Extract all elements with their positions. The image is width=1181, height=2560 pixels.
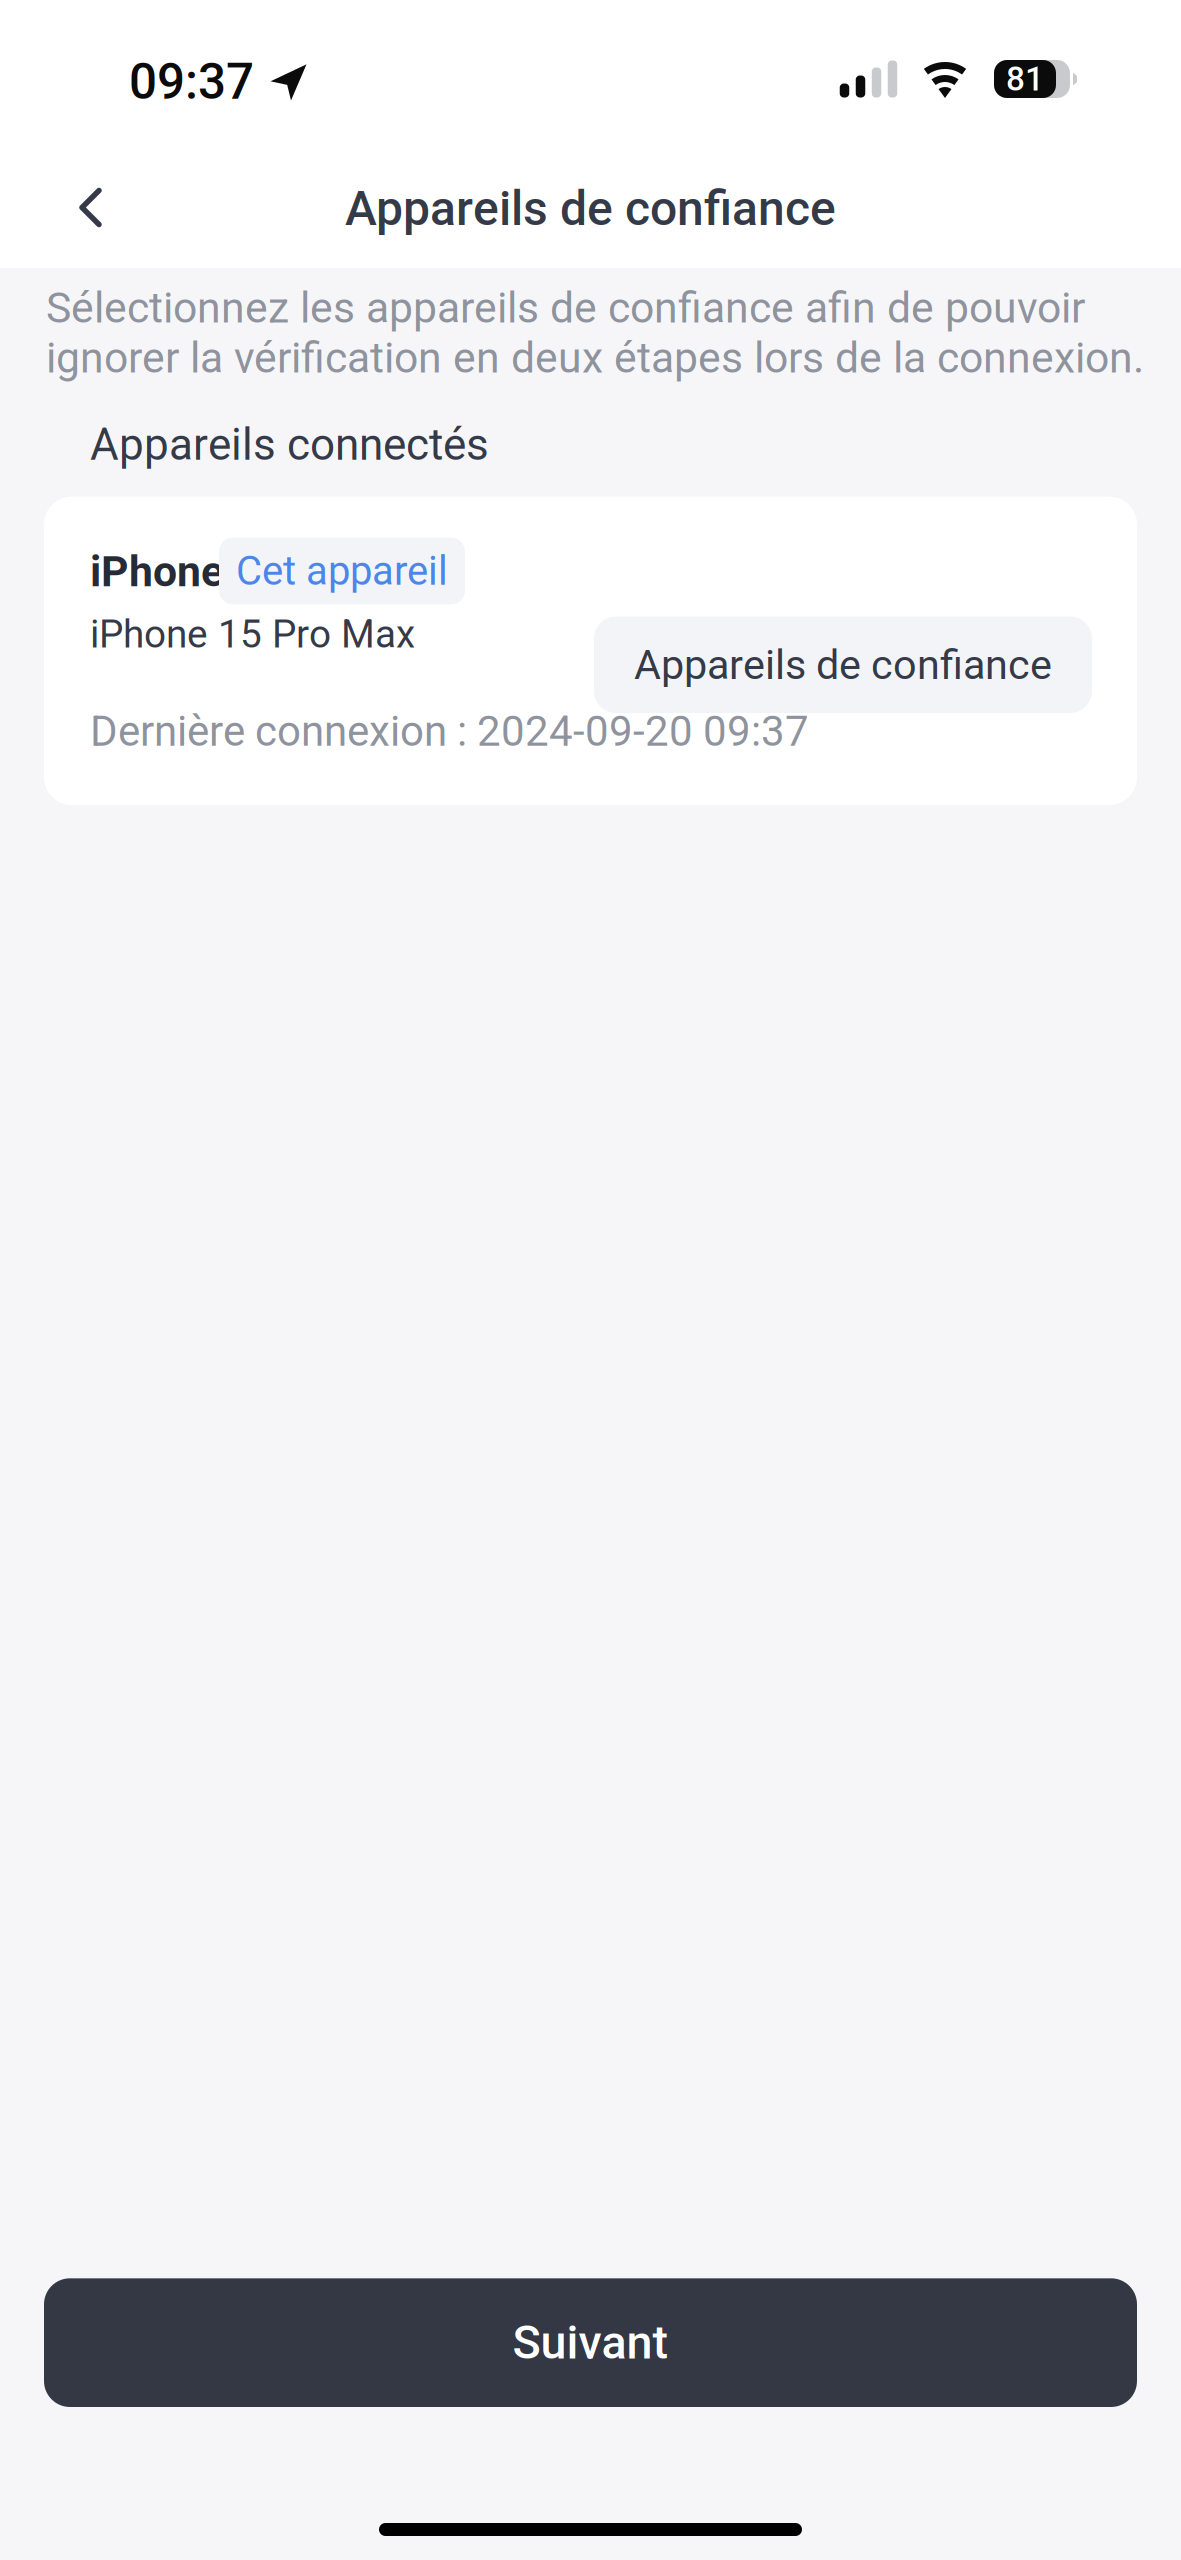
button[interactable]: Suivant (44, 2278, 1137, 2407)
staticText: Sélectionnez les appareils de confiance … (46, 283, 1144, 383)
staticText: Dernière connexion : 2024-09-20 09:37 (90, 707, 809, 756)
staticText: Appareils connectés (90, 419, 489, 471)
staticText: iPhone (90, 547, 224, 597)
staticText: Suivant (512, 2315, 668, 2370)
staticText: Appareils de confiance (634, 641, 1052, 689)
button[interactable]: Cet appareil (219, 538, 465, 604)
staticText: 81 (1006, 59, 1044, 99)
staticText: iPhone 15 Pro Max (90, 612, 415, 657)
button[interactable]: Retour (0, 131, 156, 268)
staticText: Appareils de confiance (345, 180, 836, 237)
staticText: Cet appareil (236, 548, 448, 594)
button[interactable]: Appareils de confiance (594, 617, 1092, 713)
staticText: 09:37 (129, 53, 254, 111)
